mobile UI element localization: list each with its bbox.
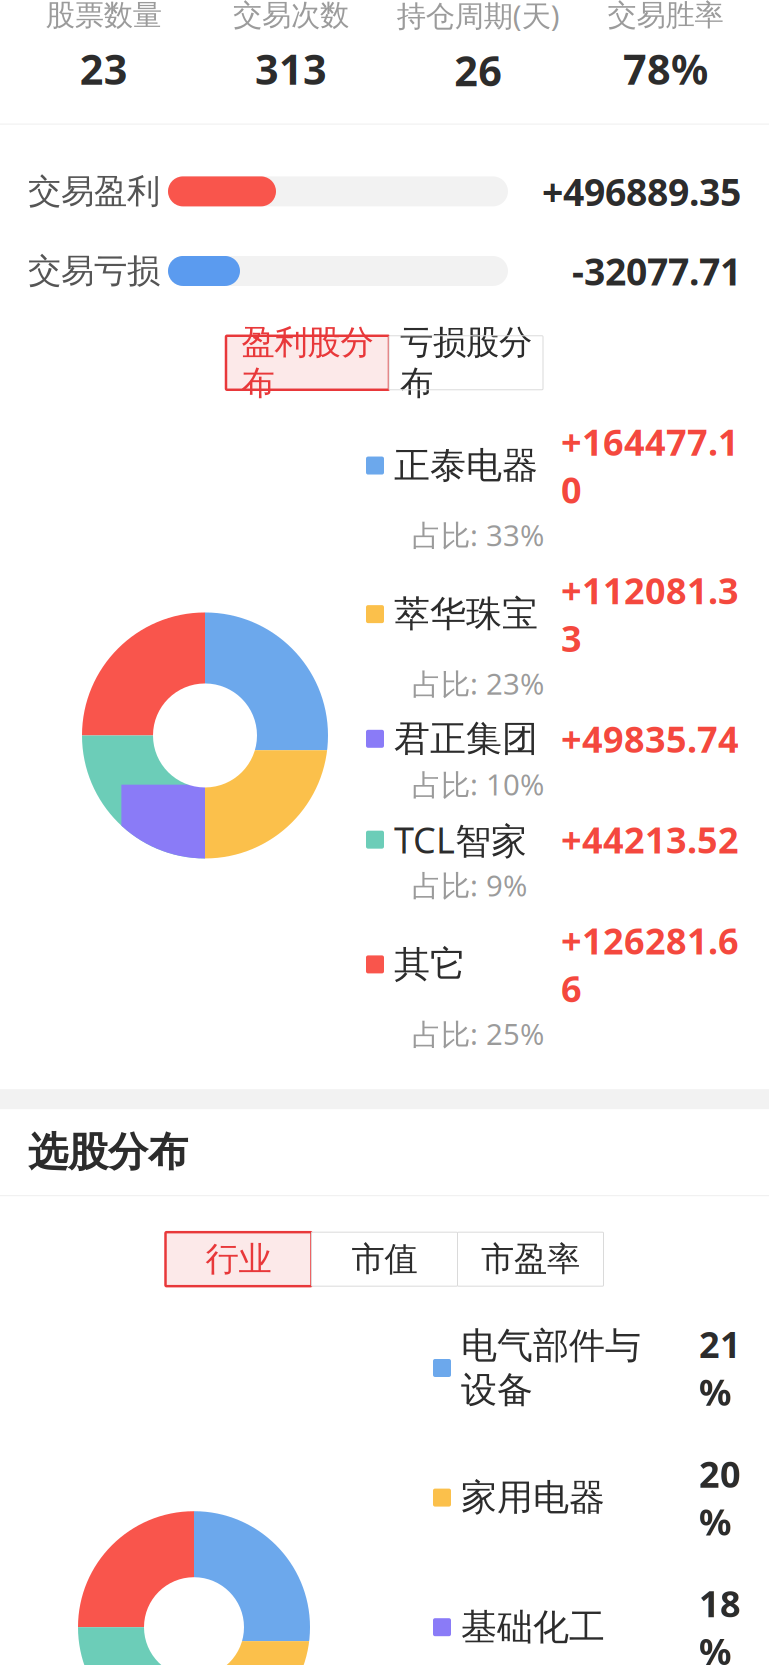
staticText: 电气部件与设备 xyxy=(461,1324,641,1412)
staticText: -32077.71 xyxy=(572,246,741,296)
staticText: +496889.35 xyxy=(542,167,741,216)
staticText: 20% xyxy=(699,1450,741,1545)
staticText: 亏损股分布 xyxy=(400,322,532,404)
staticText: +49835.74 xyxy=(561,715,739,763)
staticText: 市盈率 xyxy=(481,1239,580,1280)
staticText: 君正集团 xyxy=(394,717,538,761)
staticText: 其它 xyxy=(394,942,466,986)
staticText: 行业 xyxy=(205,1239,271,1280)
button[interactable]: 市盈率 xyxy=(457,1232,603,1286)
staticText: 萃华珠宝 xyxy=(394,592,538,636)
staticText: 持仓周期(天) xyxy=(397,0,560,35)
staticText: TCL智家 xyxy=(394,816,527,864)
staticText: 占比: 23% xyxy=(412,664,544,703)
staticText: 占比: 33% xyxy=(412,515,544,554)
staticText: 盈利股分布 xyxy=(241,322,373,404)
staticText: +112081.33 xyxy=(561,566,739,662)
staticText: 23 xyxy=(80,41,128,96)
staticText: 市值 xyxy=(351,1239,417,1280)
staticText: 18% xyxy=(699,1579,741,1665)
staticText: 交易亏损 xyxy=(28,250,160,291)
staticText: 26 xyxy=(454,43,502,98)
staticText: 78% xyxy=(623,41,708,96)
staticText: 选股分布 xyxy=(28,1128,188,1177)
staticText: 交易胜率 xyxy=(607,0,723,33)
staticText: 交易次数 xyxy=(233,0,349,33)
staticText: 313 xyxy=(255,41,327,96)
staticText: 交易盈利 xyxy=(28,171,160,212)
staticText: +44213.52 xyxy=(561,816,739,863)
staticText: 占比: 25% xyxy=(412,1014,544,1053)
staticText: +164477.10 xyxy=(561,418,739,513)
staticText: 21% xyxy=(699,1320,741,1416)
button[interactable]: 亏损股分布 xyxy=(389,336,543,390)
staticText: 正泰电器 xyxy=(394,443,538,488)
staticText: +126281.66 xyxy=(561,917,739,1012)
staticText: 家用电器 xyxy=(461,1475,605,1520)
staticText: 占比: 9% xyxy=(412,866,527,905)
button[interactable]: 行业 xyxy=(165,1232,311,1286)
staticText: 股票数量 xyxy=(46,0,162,33)
staticText: 基础化工 xyxy=(461,1605,605,1649)
staticText: 占比: 10% xyxy=(412,765,544,804)
button[interactable]: 盈利股分布 xyxy=(226,336,389,390)
button[interactable]: 市值 xyxy=(311,1232,457,1286)
